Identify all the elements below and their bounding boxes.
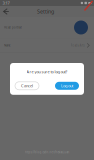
- staticText: Setting: [37, 8, 54, 15]
- staticText: https://blog.csdn.net/hexiaojuan: [24, 150, 69, 154]
- staticText: 3:17: [2, 0, 9, 6]
- button[interactable]: Log out: [55, 82, 79, 90]
- staticText: Head portrait: [4, 26, 22, 29]
- button[interactable]: Cancel: [15, 82, 39, 90]
- staticText: Name: [4, 44, 11, 47]
- staticText: Cancel: [21, 83, 33, 88]
- staticText: Ready Arts: [71, 44, 85, 47]
- staticText: Are you sure to log out?: [26, 69, 67, 74]
- button[interactable]: Head portrait: [0, 17, 94, 38]
- button[interactable]: Back: [0, 6, 12, 17]
- staticText: Log out: [61, 83, 73, 88]
